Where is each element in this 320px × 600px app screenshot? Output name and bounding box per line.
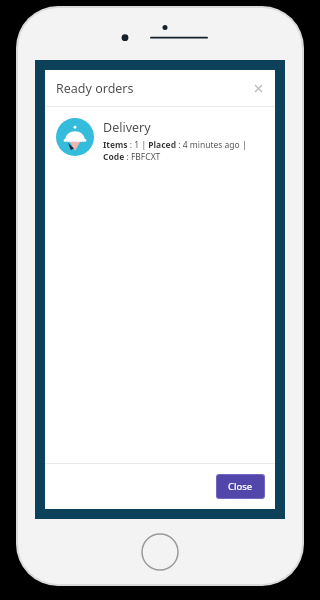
staticText: Close <box>228 480 253 493</box>
staticText: Delivery <box>103 119 151 136</box>
button[interactable]: Home <box>138 530 182 574</box>
staticText: Ready orders <box>56 80 134 97</box>
button[interactable]: Close dialog <box>247 77 269 99</box>
button[interactable]: Delivery <box>45 107 275 174</box>
staticText: Items : 1 | Placed : 4 minutes ago | <box>103 139 247 151</box>
button[interactable]: Close <box>217 475 264 498</box>
staticText: Code : FBFCXT <box>103 151 161 163</box>
